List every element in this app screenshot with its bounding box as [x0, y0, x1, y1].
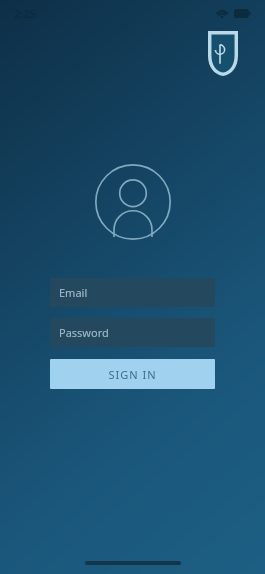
staticText: SIGN IN	[108, 367, 157, 382]
staticText: 2:25	[14, 6, 36, 21]
button[interactable]: SIGN IN	[50, 359, 215, 389]
staticText: Password	[59, 325, 109, 340]
button[interactable]: Password	[50, 318, 215, 347]
button[interactable]: Email	[50, 278, 215, 307]
button[interactable]: App logo	[208, 31, 238, 76]
staticText: Email	[59, 285, 88, 300]
